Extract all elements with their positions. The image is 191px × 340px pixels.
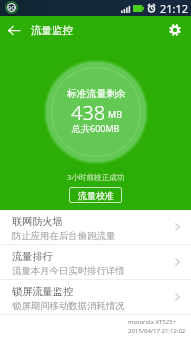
staticText: 2015/04/17 21:12:02 <box>128 327 186 335</box>
staticText: 流量排行 <box>12 250 53 263</box>
staticText: 21:12 <box>160 1 189 16</box>
staticText: 防止应用在后台偷跑流量 <box>12 230 116 242</box>
button[interactable]: Settings <box>161 16 189 44</box>
button[interactable]: 流量校准 <box>69 187 122 203</box>
button[interactable]: Back <box>0 16 28 44</box>
button[interactable]: 锁屏流量监控 <box>0 280 191 314</box>
staticText: 流量校准 <box>78 190 114 201</box>
staticText: MB <box>108 108 123 120</box>
button[interactable]: 流量排行 <box>0 245 191 279</box>
staticText: 联网防火墙 <box>12 215 63 228</box>
button[interactable]: 联网防火墙 <box>0 210 191 244</box>
staticText: 锁屏期间移动数据消耗情况 <box>12 300 125 312</box>
staticText: 438 <box>71 99 106 126</box>
staticText: 标准流量剩余 <box>67 88 126 100</box>
staticText: 90 <box>8 4 15 12</box>
staticText: 3小时前校正成功 <box>67 172 125 182</box>
staticText: motorola XT525+ <box>128 318 177 326</box>
staticText: 流量本月今日实时排行详情 <box>12 265 125 277</box>
staticText: 总共600MB <box>72 122 120 134</box>
staticText: 流量监控 <box>31 24 73 37</box>
staticText: 锁屏流量监控 <box>12 285 74 298</box>
